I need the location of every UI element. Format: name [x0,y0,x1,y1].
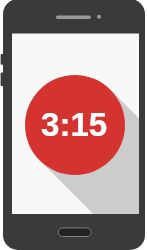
button[interactable]: Smartphone alarm clock showing 3:15 [0,0,147,250]
